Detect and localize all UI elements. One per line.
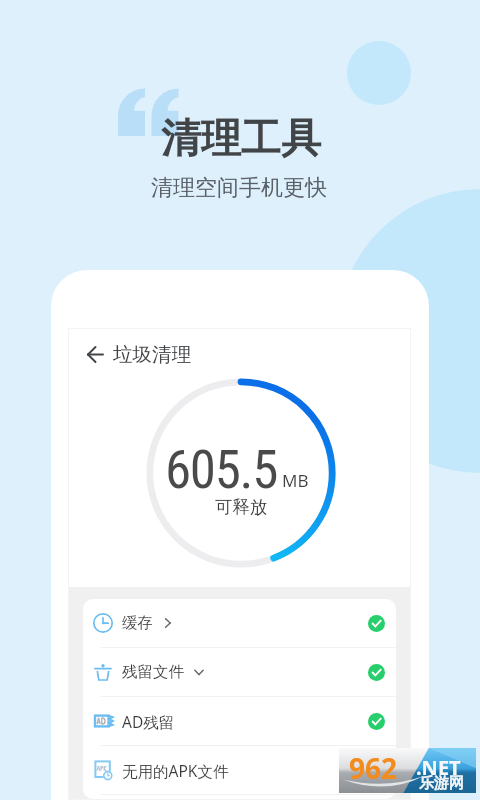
staticText: 缓存 — [122, 613, 153, 633]
button[interactable]: 残留文件 — [83, 648, 396, 696]
staticText: 垃圾清理 — [113, 342, 191, 367]
staticText: 残留文件 — [122, 662, 184, 682]
button[interactable]: AD残留 — [83, 697, 396, 745]
staticText: 962 — [349, 749, 398, 787]
staticText: 无用的APK文件 — [122, 760, 229, 781]
staticText: 清理工具 — [161, 113, 321, 163]
staticText: 605.5 — [165, 439, 278, 501]
staticText: 清理空间手机更快 — [151, 174, 327, 202]
button[interactable]: 缓存 — [83, 599, 396, 647]
staticText: 乐游网 — [419, 774, 464, 793]
other: Back — [87, 346, 104, 363]
button[interactable]: 无用的APK文件 — [83, 746, 396, 794]
staticText: 可释放 — [215, 496, 268, 518]
staticText: .NET — [416, 754, 461, 781]
staticText: AD残留 — [122, 711, 175, 732]
staticText: MB — [282, 469, 309, 492]
button[interactable]: Back — [69, 329, 410, 380]
